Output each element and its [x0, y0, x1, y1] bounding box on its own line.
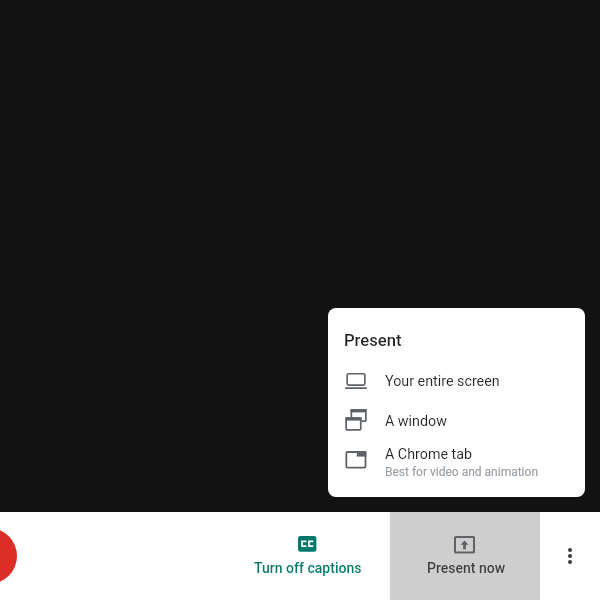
staticText: Turn off captions	[254, 560, 362, 576]
staticText: A Chrome tab	[385, 446, 473, 463]
button[interactable]: More options	[543, 512, 597, 600]
button[interactable]: A window	[328, 401, 585, 441]
button[interactable]: Leave call	[0, 528, 17, 584]
staticText: Your entire screen	[385, 373, 500, 390]
button[interactable]: Your entire screen	[328, 361, 585, 401]
button[interactable]: A Chrome tab	[328, 441, 585, 481]
button[interactable]: Turn off captions	[243, 512, 372, 600]
button[interactable]: Present now	[390, 512, 540, 600]
staticText: A window	[385, 413, 447, 430]
staticText: Present now	[427, 560, 506, 576]
staticText: Present	[344, 331, 402, 350]
staticText: Best for video and animation	[385, 465, 539, 479]
